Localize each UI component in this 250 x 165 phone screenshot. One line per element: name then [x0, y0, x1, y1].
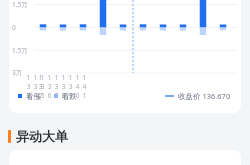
- staticText: 看涨: [26, 92, 41, 101]
- staticText: 0: [12, 23, 16, 32]
- staticText: 137: [53, 73, 60, 100]
- staticText: 133: [25, 73, 32, 100]
- staticText: 3万: [12, 68, 23, 77]
- button[interactable]: 异动大单: [0, 126, 250, 146]
- button[interactable]: 1.5万: [9, 0, 241, 113]
- staticText: 看跌: [62, 92, 77, 101]
- staticText: 1.5万: [12, 0, 28, 9]
- staticText: 139: [67, 73, 74, 100]
- staticText: 136: [46, 73, 53, 100]
- staticText: 异动大单: [16, 128, 68, 144]
- staticText: 140: [74, 73, 81, 100]
- staticText: 135: [39, 73, 46, 100]
- staticText: 134: [32, 73, 39, 100]
- staticText: 收盘价 136.670: [178, 91, 231, 101]
- staticText: 1.5万: [12, 46, 28, 55]
- staticText: 141: [81, 73, 88, 100]
- staticText: 132: [37, 73, 44, 100]
- staticText: 138: [60, 73, 67, 100]
